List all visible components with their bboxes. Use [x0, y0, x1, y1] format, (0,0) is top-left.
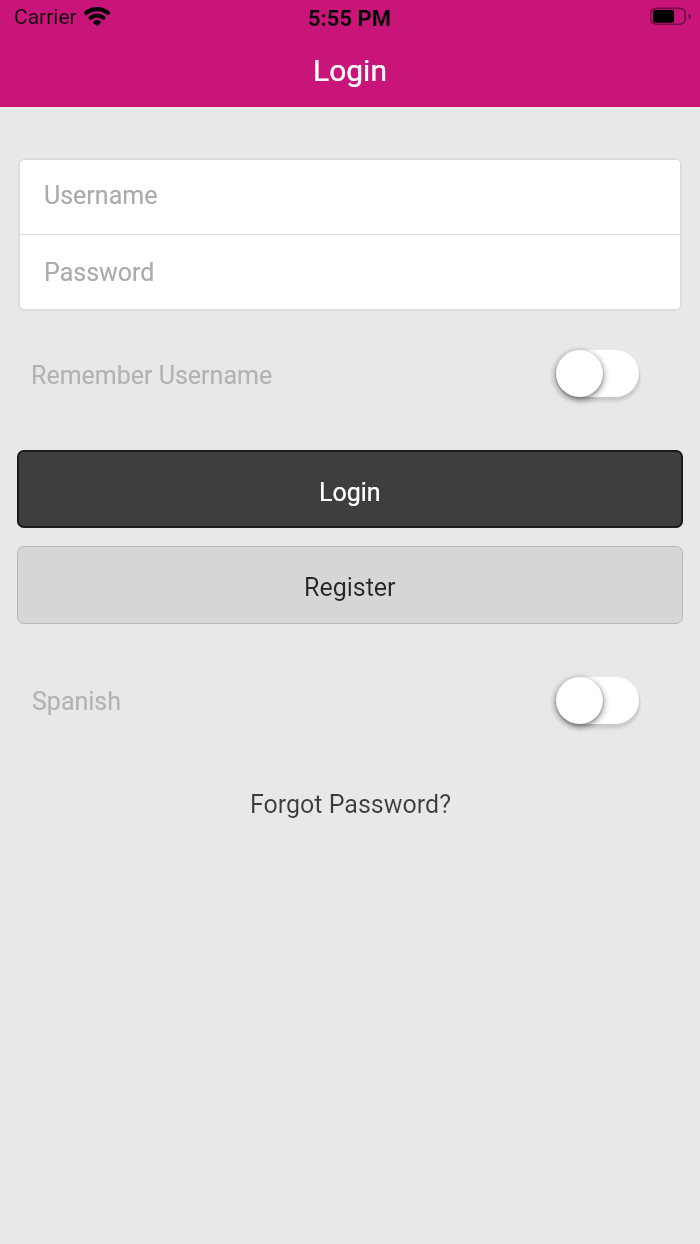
button[interactable]: Username	[18, 158, 682, 234]
button[interactable]: Login	[17, 450, 683, 528]
staticText: Forgot Password?	[250, 790, 451, 819]
staticText: Register	[304, 573, 396, 602]
button[interactable]: Password	[18, 235, 682, 311]
button[interactable]: Spanish switch	[556, 671, 646, 731]
staticText: Login	[319, 478, 381, 507]
staticText: Login	[313, 53, 387, 88]
other: Wi-Fi	[84, 7, 110, 26]
staticText: 5:55 PM	[308, 6, 392, 32]
button[interactable]: Register	[17, 546, 683, 624]
staticText: Spanish	[32, 687, 122, 716]
staticText: Remember Username	[31, 361, 273, 390]
staticText: Username	[44, 181, 158, 210]
staticText: Password	[44, 258, 155, 287]
other: Battery	[650, 7, 691, 26]
button[interactable]: Forgot Password?	[0, 784, 700, 824]
button[interactable]: Remember Username switch	[556, 344, 646, 404]
staticText: Carrier	[14, 5, 77, 30]
